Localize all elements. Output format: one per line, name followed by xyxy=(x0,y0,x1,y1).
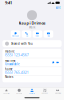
button[interactable]: Notes xyxy=(2,75,62,82)
staticText: Keypad xyxy=(42,92,48,94)
button[interactable]: Contacts xyxy=(26,87,38,95)
button[interactable]: message xyxy=(11,30,20,38)
staticText: Voicemail xyxy=(55,92,61,94)
button[interactable]: Edit xyxy=(56,6,64,10)
staticText: Notes xyxy=(5,75,13,79)
button[interactable]: FaceTime xyxy=(2,58,62,67)
staticText: mobile xyxy=(5,50,15,53)
staticText: message xyxy=(12,35,19,37)
staticText: 9:41 xyxy=(5,0,12,5)
button[interactable]: call xyxy=(22,30,31,38)
staticText: FaceTime xyxy=(5,59,16,62)
button[interactable]: Shared with You xyxy=(2,40,62,47)
staticText: Contacts xyxy=(29,92,35,94)
staticText: call xyxy=(25,35,27,37)
staticText: (555) 765-4321 xyxy=(5,71,29,75)
button[interactable]: mobile xyxy=(2,49,62,58)
button[interactable]: Recents xyxy=(13,87,26,95)
button[interactable]: Favorites xyxy=(0,87,13,95)
button[interactable]: video xyxy=(33,30,42,38)
staticText: Asupi Drimos xyxy=(18,20,45,26)
staticText: Shared with You xyxy=(11,42,33,45)
staticText: mail xyxy=(47,35,49,37)
staticText: Edit xyxy=(56,6,61,9)
button[interactable]: mail xyxy=(44,30,53,38)
staticText: video xyxy=(35,35,39,37)
staticText: Unavailable xyxy=(5,62,20,66)
button[interactable]: home xyxy=(2,67,62,75)
staticText: Favorites xyxy=(3,92,10,94)
button[interactable]: Voicemail xyxy=(51,87,64,95)
staticText: Work xyxy=(29,26,35,29)
button[interactable]: Keypad xyxy=(38,87,51,95)
staticText: Recents xyxy=(16,92,22,94)
staticText: home xyxy=(5,67,13,71)
staticText: (555) 123-4567 xyxy=(5,53,29,57)
